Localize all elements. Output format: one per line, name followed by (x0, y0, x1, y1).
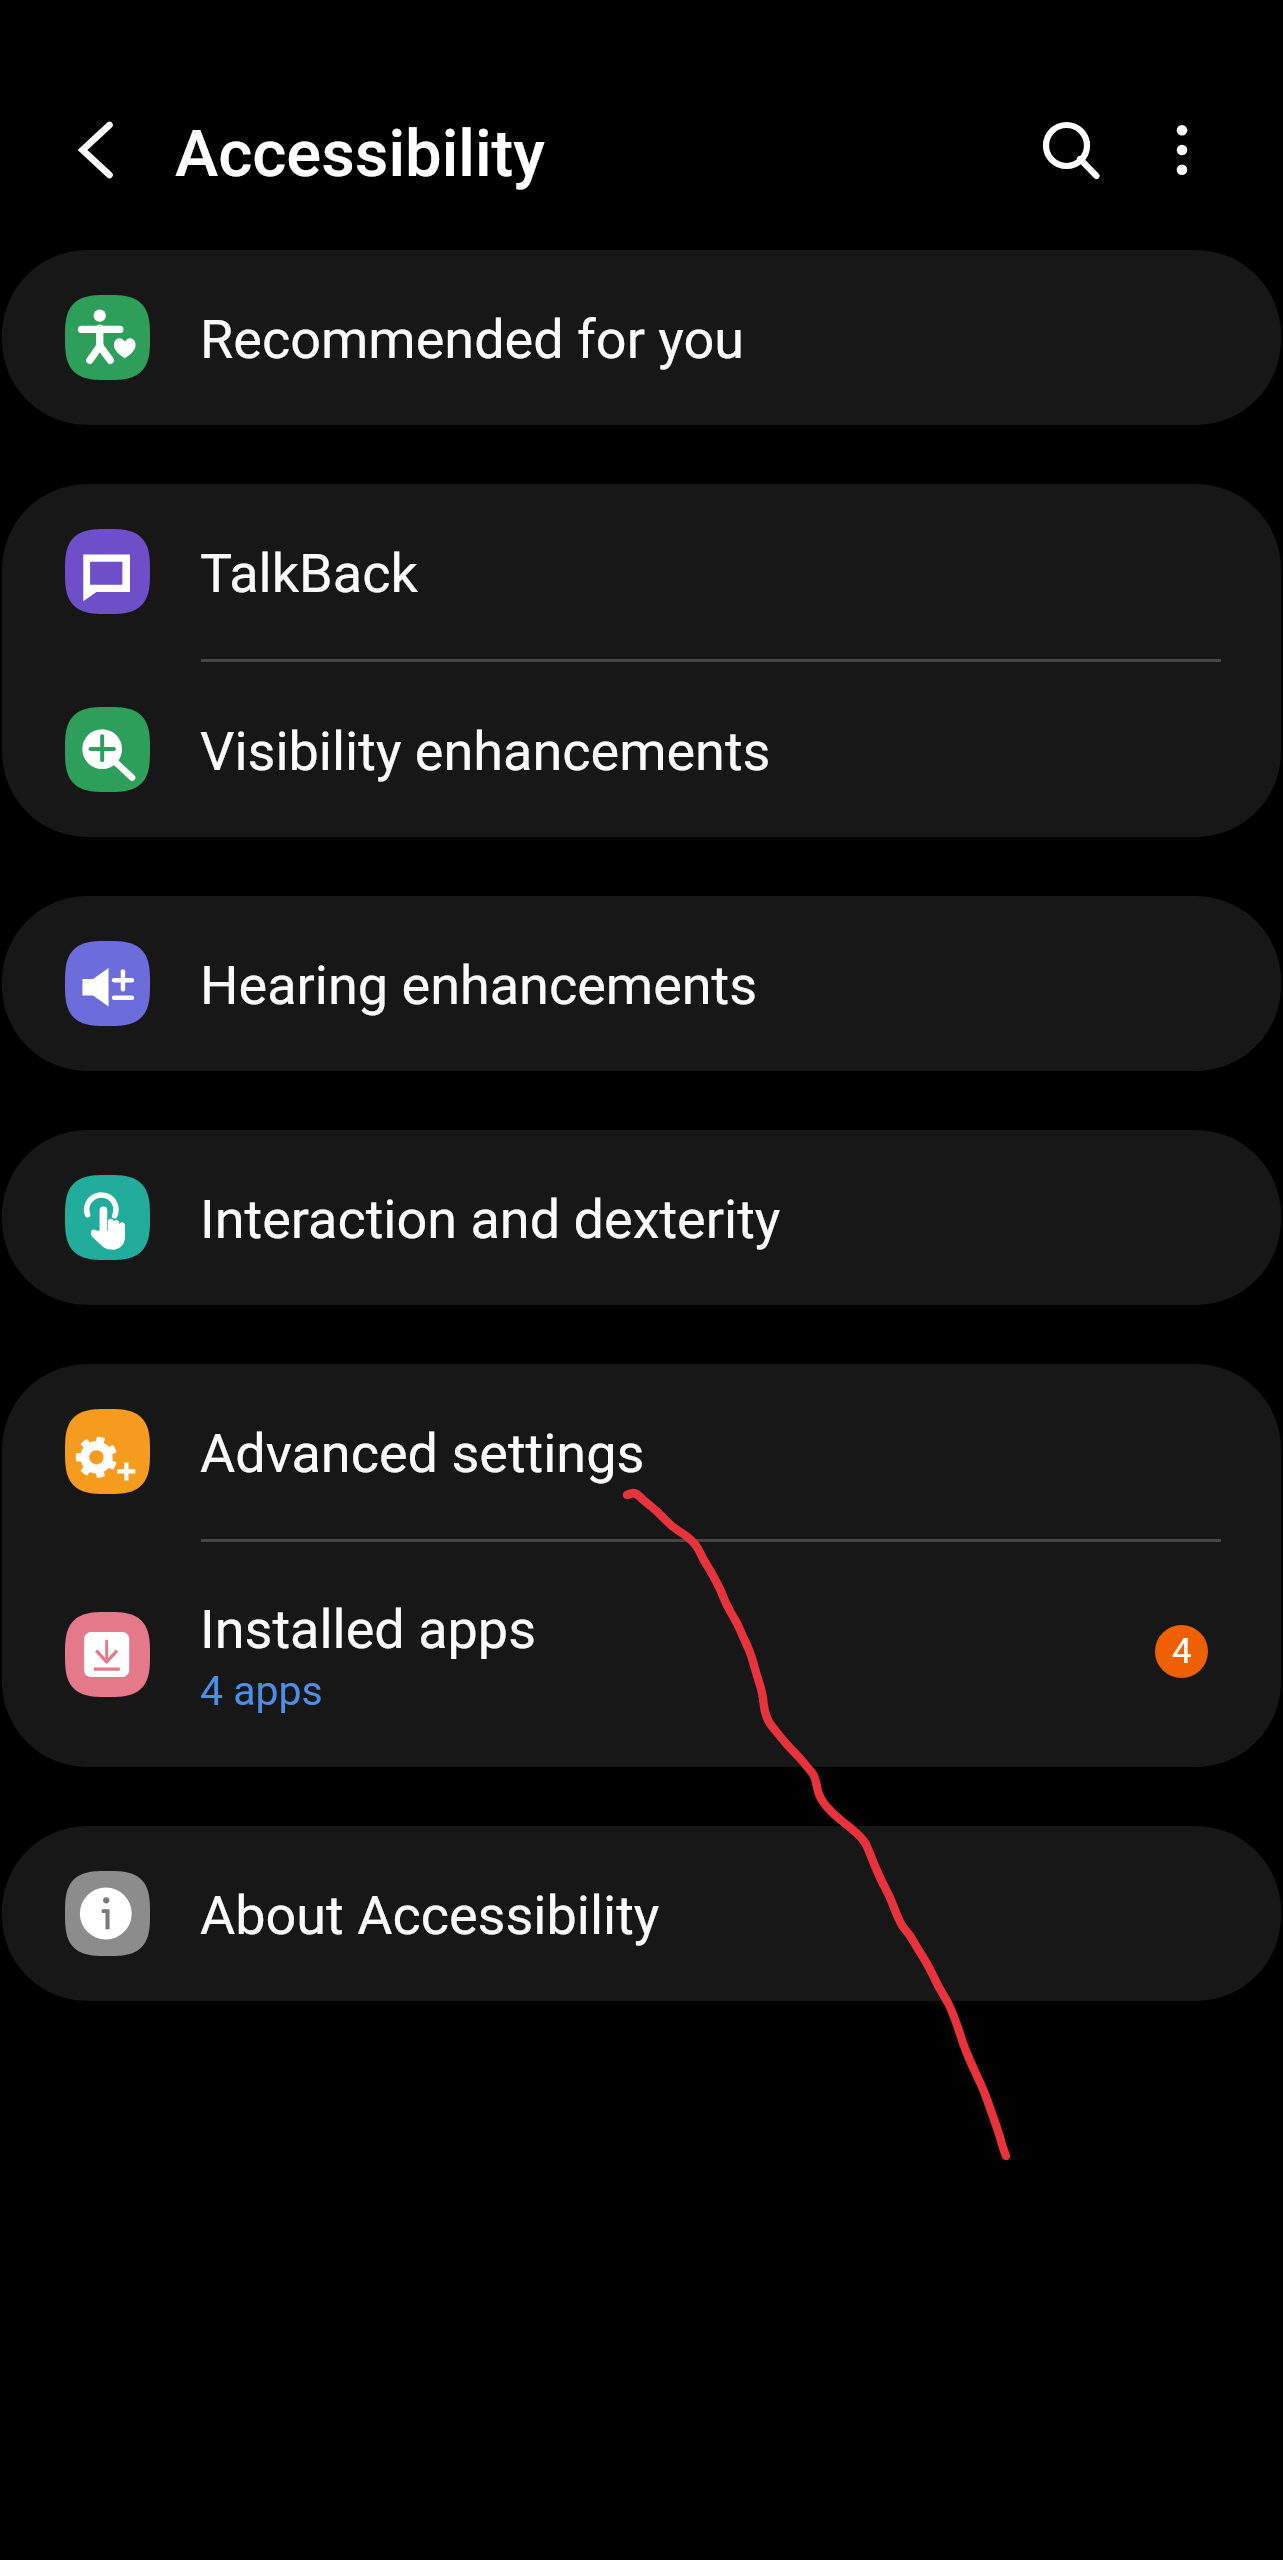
button[interactable]: Hearing enhancements (2, 896, 1281, 1071)
button[interactable]: Navigate up (48, 102, 144, 198)
button[interactable]: More options (1127, 95, 1237, 205)
staticText: Recommended for you (200, 308, 745, 371)
staticText: Interaction and dexterity (200, 1188, 781, 1251)
staticText: Visibility enhancements (200, 720, 771, 783)
staticText: About Accessibility (200, 1884, 660, 1947)
button[interactable]: TalkBack (2, 484, 1281, 659)
staticText: Hearing enhancements (200, 954, 758, 1017)
staticText: TalkBack (200, 542, 418, 605)
button[interactable]: Visibility enhancements (2, 662, 1281, 837)
button[interactable]: Advanced settings (2, 1364, 1281, 1539)
staticText: Installed apps (200, 1598, 537, 1661)
staticText: Accessibility (175, 116, 545, 192)
button[interactable]: 4 (1155, 1625, 1208, 1678)
staticText: 4 (1172, 1631, 1192, 1672)
button[interactable]: Installed apps (2, 1542, 1281, 1767)
button[interactable]: About Accessibility (2, 1826, 1281, 2001)
staticText: 4 apps (200, 1667, 323, 1715)
button[interactable]: Search (1017, 95, 1127, 205)
staticText: Advanced settings (200, 1422, 645, 1485)
button[interactable]: Recommended for you (2, 250, 1281, 425)
button[interactable]: Interaction and dexterity (2, 1130, 1281, 1305)
